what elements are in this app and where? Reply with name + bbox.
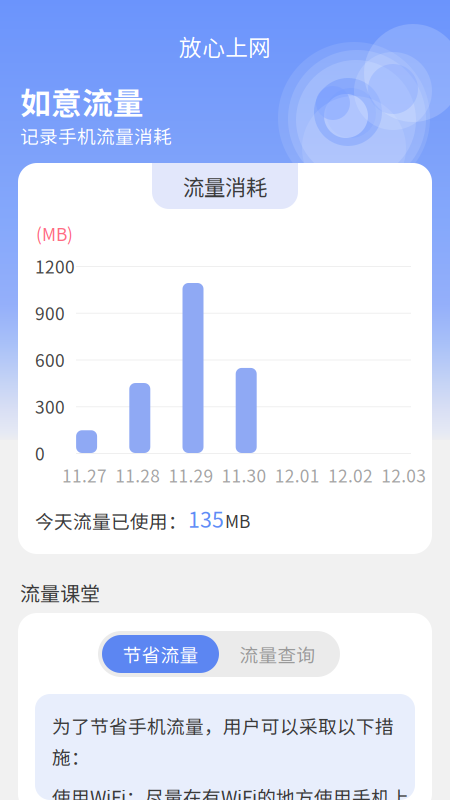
staticText: 11.28 (115, 462, 160, 488)
staticText: 135 (188, 503, 224, 534)
staticText: 节省流量 (122, 640, 198, 667)
staticText: 流量课堂 (20, 578, 100, 607)
staticText: 12.03 (381, 462, 426, 488)
staticText: 今天流量已使用： (35, 507, 187, 534)
staticText: 为了节省手机流量，用户可以采取以下措 (52, 712, 394, 739)
staticText: 放心上网 (179, 30, 271, 62)
staticText: 11.27 (62, 462, 107, 488)
staticText: 600 (35, 347, 65, 372)
button[interactable]: 节省流量 (102, 635, 219, 673)
staticText: (MB) (36, 221, 73, 246)
staticText: 0 (35, 440, 45, 466)
staticText: 12.01 (275, 462, 320, 488)
staticText: 流量查询 (239, 640, 315, 667)
staticText: 11.30 (222, 462, 267, 488)
staticText: 900 (35, 300, 65, 325)
button[interactable]: 流量查询 (219, 635, 336, 673)
staticText: 11.29 (168, 462, 213, 488)
staticText: MB (225, 508, 250, 533)
staticText: 记录手机流量消耗 (20, 122, 172, 149)
staticText: 施： (52, 743, 90, 770)
staticText: 使用WiFi：尽量在有WiFi的地方使用手机上 (52, 783, 409, 800)
staticText: 1200 (35, 253, 75, 279)
staticText: 流量消耗 (183, 171, 267, 201)
staticText: 12.02 (328, 462, 373, 488)
staticText: 如意流量 (20, 79, 144, 123)
staticText: 300 (35, 394, 65, 419)
